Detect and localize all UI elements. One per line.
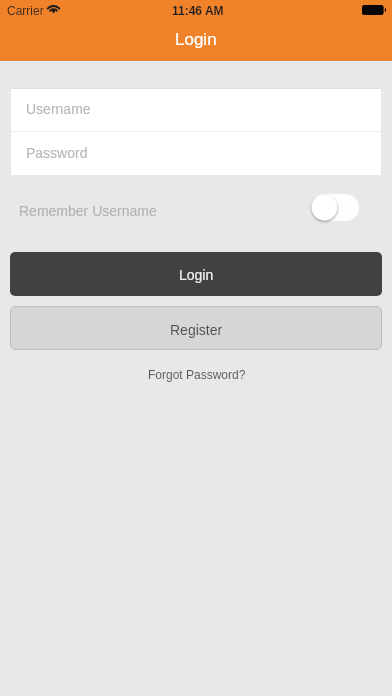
- button[interactable]: Password input field: [11, 132, 381, 175]
- staticText: 11:46 AM: [172, 4, 224, 17]
- staticText: Password: [26, 145, 88, 161]
- staticText: Forgot Password?: [148, 368, 246, 381]
- staticText: Carrier: [7, 4, 44, 17]
- staticText: Login: [175, 30, 217, 49]
- button[interactable]: Forgot Password?: [139, 365, 253, 386]
- staticText: Username: [26, 101, 91, 117]
- button[interactable]: Login: [10, 252, 382, 296]
- staticText: Register: [170, 322, 223, 338]
- button[interactable]: Username input field: [11, 89, 381, 131]
- other: Battery full: [362, 5, 386, 15]
- button[interactable]: Register: [10, 306, 382, 350]
- staticText: Login: [179, 267, 214, 283]
- staticText: Remember Username: [19, 203, 157, 219]
- button[interactable]: Remember Username, off: [311, 194, 359, 221]
- other: Wi-Fi signal: [47, 0, 60, 20]
